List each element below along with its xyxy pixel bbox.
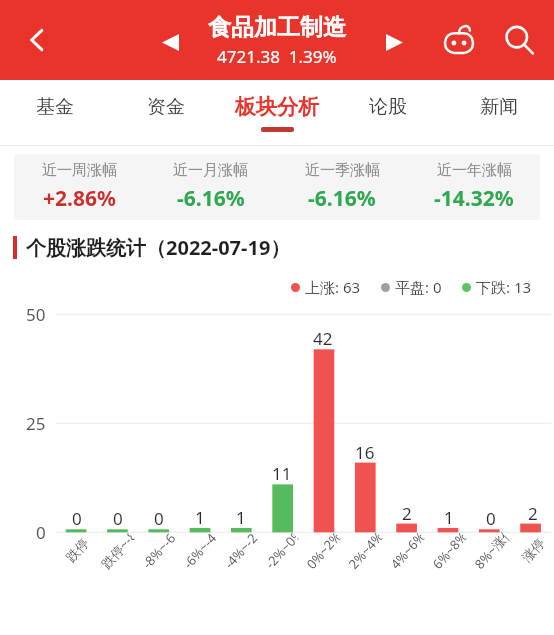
staticText: 2 — [528, 502, 538, 525]
button[interactable]: 近一周涨幅 — [14, 161, 145, 213]
staticText: 42 — [313, 327, 333, 350]
button[interactable]: Assistant — [436, 17, 482, 63]
staticText: -8%~-6% — [138, 530, 179, 572]
button[interactable]: 板块分析 — [221, 80, 332, 145]
staticText: 资金 — [147, 95, 185, 119]
button[interactable]: 论股 — [332, 80, 443, 145]
staticText: +2.86% — [43, 184, 116, 213]
staticText: 1 — [236, 506, 246, 529]
staticText: 0 — [36, 521, 46, 544]
button[interactable]: 近一年涨幅 — [408, 161, 540, 213]
staticText: 下跌: 13 — [476, 277, 532, 297]
staticText: 0 — [154, 507, 164, 530]
staticText: 食品加工制造 — [208, 13, 346, 42]
staticText: 涨停 — [518, 535, 548, 565]
button[interactable]: 近一月涨幅 — [145, 161, 276, 213]
staticText: 6%~8% — [428, 529, 470, 573]
staticText: 0 — [113, 507, 123, 530]
staticText: 2 — [402, 502, 412, 525]
staticText: 近一季涨幅 — [305, 161, 380, 180]
staticText: 近一年涨幅 — [437, 161, 512, 180]
button[interactable]: Previous sector — [150, 22, 190, 62]
button[interactable]: 近一季涨幅 — [276, 161, 408, 213]
staticText: 平盘: 0 — [395, 277, 442, 297]
staticText: 0 — [486, 507, 496, 530]
staticText: 新闻 — [480, 95, 518, 119]
staticText: 16 — [355, 441, 375, 464]
staticText: 11 — [272, 462, 292, 485]
staticText: -2%~0% — [261, 530, 302, 572]
button[interactable]: Next sector — [374, 22, 414, 62]
staticText: 板块分析 — [235, 94, 319, 120]
button[interactable]: 资金 — [110, 80, 221, 145]
button[interactable]: Back — [12, 15, 62, 65]
button[interactable]: 基金 — [0, 80, 110, 145]
staticText: -6%~-4% — [179, 530, 220, 572]
staticText: 跌停 — [62, 535, 92, 565]
staticText: -6.16% — [177, 184, 245, 213]
staticText: 2%~4% — [344, 529, 386, 573]
staticText: 50 — [26, 303, 46, 326]
staticText: 1 — [444, 506, 454, 529]
staticText: 0%~2% — [302, 529, 344, 573]
staticText: 个股涨跌统计（2022-07-19） — [26, 234, 291, 261]
staticText: 0 — [72, 507, 82, 530]
staticText: 近一月涨幅 — [173, 161, 248, 180]
button[interactable]: Search — [496, 17, 542, 63]
staticText: 上涨: 63 — [305, 277, 361, 297]
staticText: 25 — [26, 412, 46, 435]
staticText: 基金 — [36, 95, 74, 119]
button[interactable]: 新闻 — [443, 80, 554, 145]
staticText: 4721.38 1.39% — [217, 45, 337, 68]
staticText: 8%~涨停 — [470, 529, 512, 573]
staticText: 4%~6% — [386, 529, 428, 573]
staticText: 跌停~-8% — [97, 530, 138, 572]
staticText: -14.32% — [434, 184, 514, 213]
staticText: 1 — [195, 506, 205, 529]
staticText: 论股 — [369, 95, 407, 119]
staticText: -4%~-2% — [220, 530, 261, 572]
staticText: 近一周涨幅 — [42, 161, 117, 180]
staticText: -6.16% — [308, 184, 376, 213]
